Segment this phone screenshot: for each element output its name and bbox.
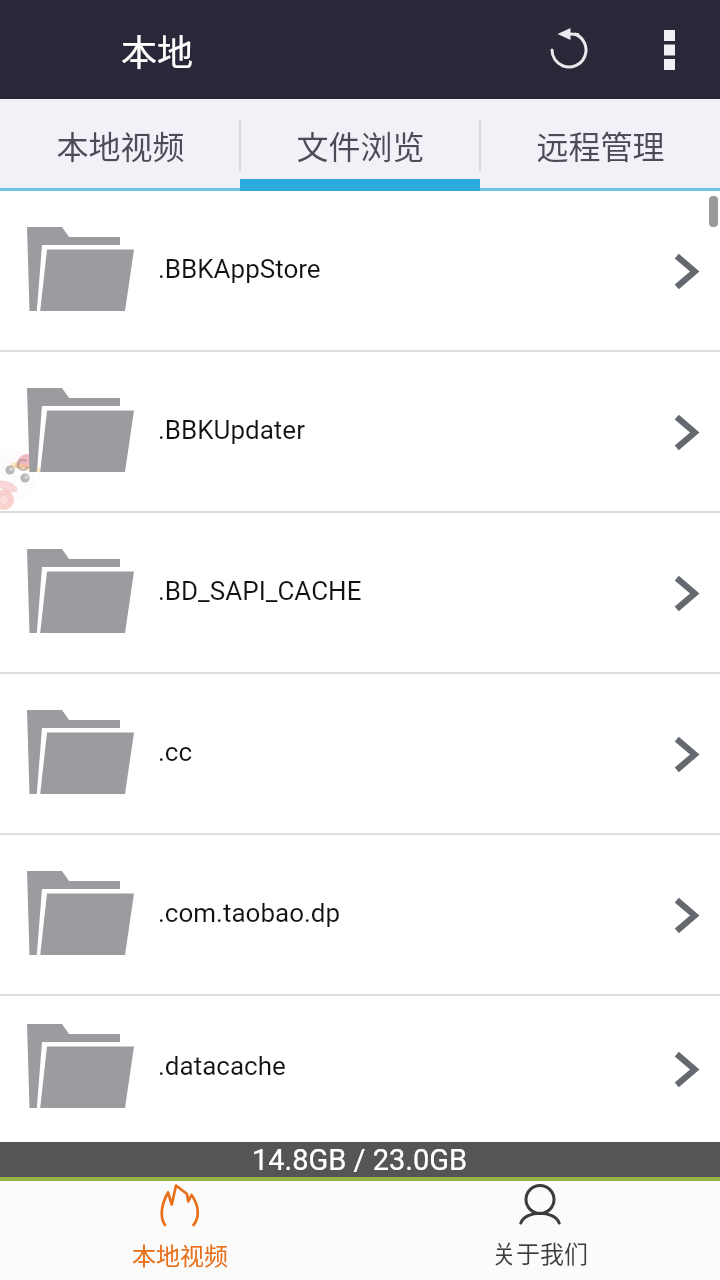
staticText: 本地视频: [132, 1237, 228, 1272]
button[interactable]: .BBKUpdater: [0, 352, 720, 513]
staticText: 本地视频: [56, 122, 185, 168]
staticText: 14.8GB / 23.0GB: [252, 1143, 468, 1177]
button[interactable]: Refresh: [524, 4, 614, 94]
button[interactable]: .BBKAppStore: [0, 191, 720, 352]
staticText: .datacache: [158, 1051, 628, 1081]
staticText: 关于我们: [492, 1235, 588, 1270]
staticText: .BBKAppStore: [158, 254, 628, 284]
staticText: .cc: [158, 737, 628, 767]
button[interactable]: 本地视频: [0, 1181, 360, 1280]
button[interactable]: .BD_SAPI_CACHE: [0, 513, 720, 674]
button[interactable]: 文件浏览: [240, 99, 480, 191]
button[interactable]: .datacache: [0, 996, 720, 1142]
button[interactable]: More options: [625, 4, 715, 94]
staticText: 本地: [121, 24, 194, 76]
button[interactable]: 本地视频: [0, 99, 240, 191]
button[interactable]: .cc: [0, 674, 720, 835]
button[interactable]: 远程管理: [480, 99, 720, 191]
staticText: .BBKUpdater: [158, 415, 628, 445]
button[interactable]: .com.taobao.dp: [0, 835, 720, 996]
staticText: 文件浏览: [296, 122, 425, 168]
staticText: 远程管理: [536, 122, 665, 168]
button[interactable]: 关于我们: [360, 1181, 720, 1280]
staticText: .com.taobao.dp: [158, 898, 628, 928]
staticText: .BD_SAPI_CACHE: [158, 576, 628, 606]
